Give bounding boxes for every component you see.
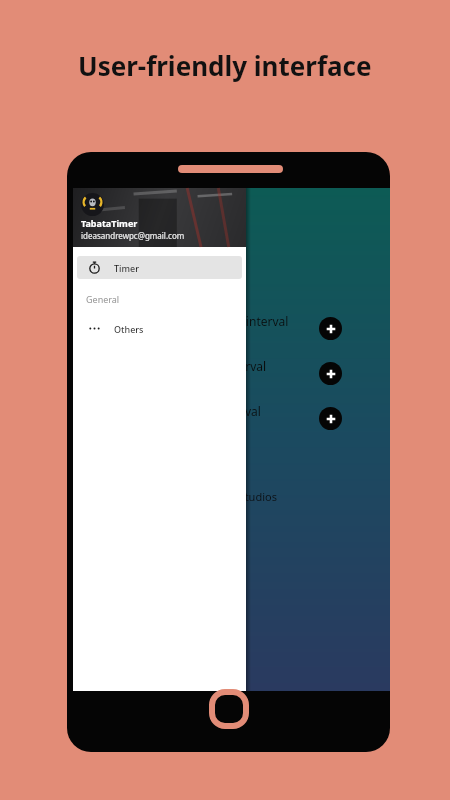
staticText: General — [86, 293, 120, 305]
staticText: Warm up interval — [191, 313, 289, 329]
button[interactable]: Timer — [77, 256, 242, 279]
staticText: TabataTimer — [81, 217, 138, 229]
button[interactable]: Add — [319, 362, 342, 385]
button[interactable]: Work interval — [73, 351, 390, 396]
staticText: ideasandrewpc@gmail.com — [81, 230, 185, 241]
staticText: Rest interval — [191, 403, 261, 419]
button[interactable]: Others — [77, 317, 242, 340]
staticText: by AJStudios — [213, 489, 277, 504]
button[interactable]: Warm up interval — [73, 306, 390, 351]
button[interactable]: Home — [208, 688, 250, 730]
staticText: Timer — [114, 262, 139, 274]
button[interactable]: Rest interval — [73, 396, 390, 441]
button[interactable]: Add — [319, 317, 342, 340]
button[interactable]: Add — [319, 407, 342, 430]
staticText: User-friendly interface — [78, 48, 372, 83]
staticText: Work interval — [191, 358, 267, 374]
staticText: Others — [114, 323, 144, 335]
button[interactable]: TabataTimer — [73, 188, 246, 247]
